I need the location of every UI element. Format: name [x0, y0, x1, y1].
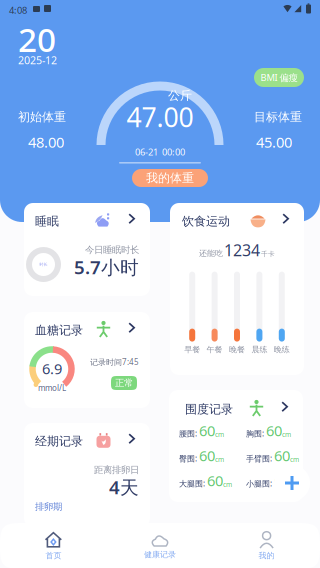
staticText: 5.7小时: [74, 255, 139, 279]
staticText: 正常: [115, 377, 133, 389]
staticText: 我的: [259, 551, 275, 560]
staticText: 排卵期: [35, 501, 62, 512]
staticText: 晚餐: [229, 345, 245, 354]
button[interactable]: 睡眠: [24, 203, 150, 296]
button[interactable]: Add: [273, 464, 311, 502]
staticText: BMI 偏瘦: [260, 71, 297, 84]
staticText: 45.00: [256, 132, 292, 152]
staticText: 60: [199, 421, 215, 440]
staticText: 60: [199, 446, 215, 465]
staticText: cm: [282, 430, 291, 439]
staticText: 06-21 00:00: [135, 146, 185, 158]
button[interactable]: 血糖记录: [24, 312, 150, 408]
staticText: 健康记录: [144, 550, 176, 559]
staticText: 胸围:: [246, 428, 264, 439]
staticText: 20: [18, 17, 56, 61]
staticText: 60: [266, 421, 282, 440]
staticText: 记录时间7:45: [90, 357, 139, 367]
staticText: 血糖记录: [35, 323, 83, 338]
staticText: 晚练: [274, 345, 290, 354]
staticText: 围度记录: [185, 402, 233, 417]
staticText: 60: [274, 446, 290, 465]
staticText: 我的体重: [146, 171, 194, 185]
staticText: 60: [274, 471, 290, 490]
button[interactable]: 健康记录: [107, 524, 213, 568]
staticText: 午餐: [207, 345, 223, 354]
staticText: 千卡: [261, 250, 275, 258]
staticText: cm: [290, 480, 299, 489]
staticText: 还能吃: [199, 248, 223, 258]
staticText: 公斤: [168, 88, 192, 103]
staticText: 60: [207, 471, 223, 490]
staticText: 腰围:: [179, 428, 197, 439]
staticText: cm: [223, 480, 232, 489]
staticText: 2025-12: [18, 53, 57, 67]
button[interactable]: BMI 偏瘦: [254, 68, 304, 87]
button[interactable]: 经期记录: [24, 423, 150, 527]
button[interactable]: 我的体重: [132, 169, 208, 187]
staticText: 4:08: [9, 4, 27, 16]
staticText: 今日睡眠时长: [85, 244, 139, 256]
staticText: 大腿围:: [179, 478, 205, 489]
staticText: mmol/L: [38, 383, 66, 393]
staticText: 睡眠: [35, 214, 59, 229]
staticText: cm: [215, 430, 224, 439]
staticText: 经期记录: [35, 434, 83, 449]
staticText: 距离排卵日: [94, 464, 139, 476]
staticText: 47.00: [126, 99, 193, 135]
staticText: 首页: [45, 551, 61, 560]
staticText: 早餐: [184, 345, 200, 354]
staticText: 4天: [109, 475, 139, 499]
staticText: 臀围:: [179, 453, 197, 464]
staticText: 6.9: [42, 359, 62, 378]
button[interactable]: 饮食运动: [170, 203, 304, 375]
staticText: 1234: [224, 239, 260, 261]
staticText: 初始体重: [18, 110, 66, 124]
button[interactable]: 首页: [0, 524, 107, 568]
staticText: 饮食运动: [182, 214, 230, 229]
staticText: 小腿围:: [246, 478, 272, 489]
button[interactable]: 围度记录: [170, 390, 304, 502]
staticText: cm: [290, 455, 299, 464]
staticText: 晨练: [251, 345, 267, 354]
button[interactable]: 我的: [213, 524, 320, 568]
staticText: 时长: [39, 262, 47, 267]
staticText: cm: [215, 455, 224, 464]
staticText: 48.00: [28, 132, 64, 152]
staticText: 目标体重: [254, 110, 302, 124]
staticText: 手臂围:: [246, 453, 272, 464]
